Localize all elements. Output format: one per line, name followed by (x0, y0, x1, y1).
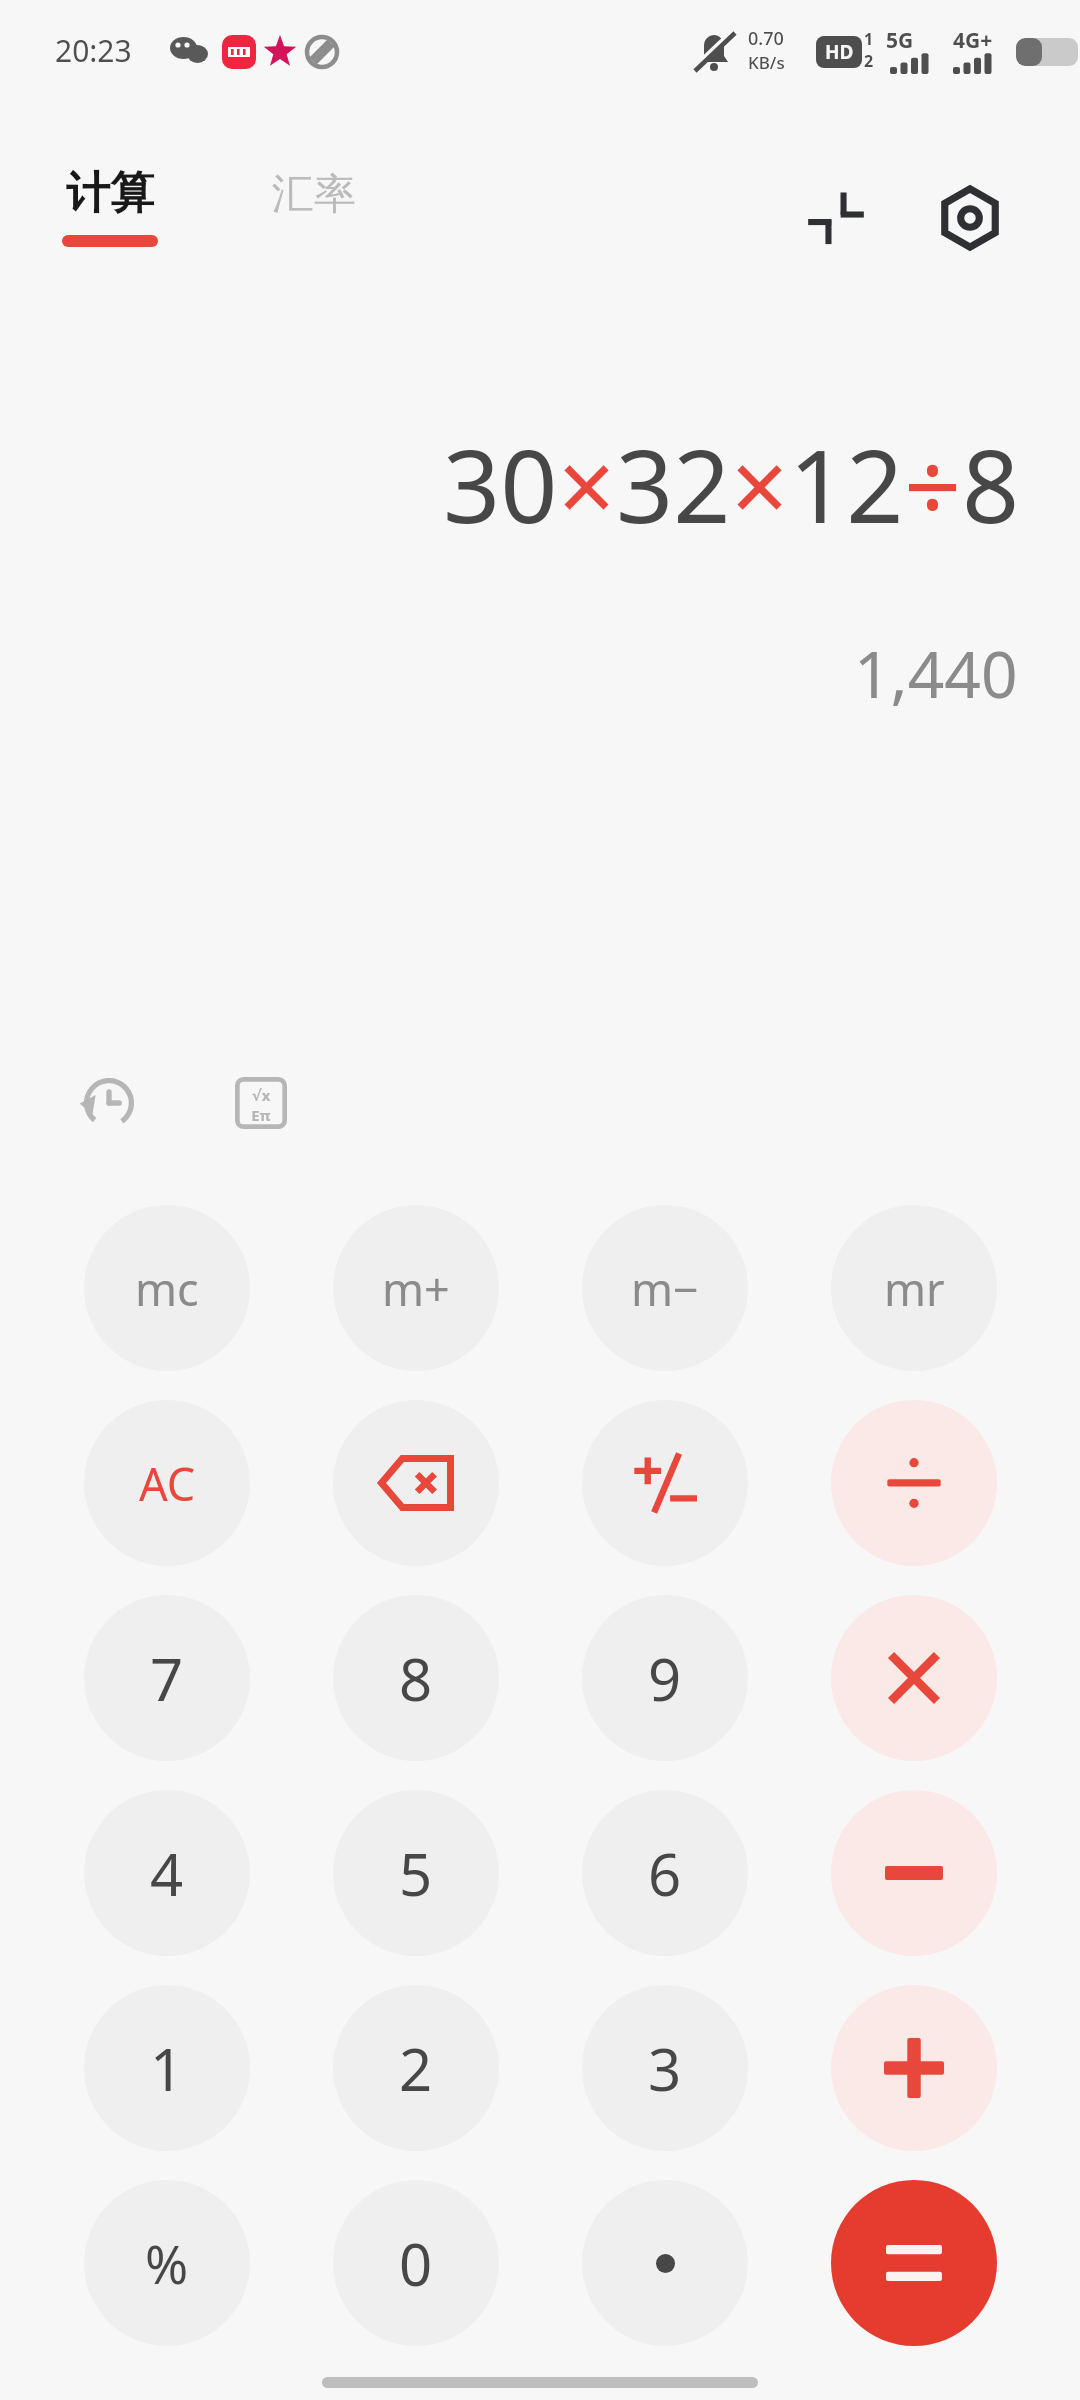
button[interactable]: 6 (582, 1790, 748, 1956)
staticText: 6 (648, 1834, 682, 1913)
staticText: HD (825, 39, 854, 65)
button[interactable]: Equals (831, 2180, 997, 2346)
staticText: × (731, 416, 789, 552)
button[interactable]: 汇率 (272, 168, 356, 221)
staticText: mr (884, 1258, 945, 1319)
staticText: × (558, 416, 616, 552)
staticText: AC (139, 1453, 196, 1514)
staticText: 0.70 (748, 26, 784, 51)
button[interactable]: 0 (333, 2180, 499, 2346)
button[interactable]: History (70, 1064, 148, 1142)
button[interactable]: m+ (333, 1205, 499, 1371)
staticText: m+ (382, 1258, 450, 1319)
button[interactable]: Backspace (333, 1400, 499, 1566)
button[interactable]: Unit converter (786, 168, 886, 268)
staticText: 5 (399, 1834, 433, 1913)
staticText: 1 (150, 2029, 184, 2108)
button[interactable]: mc (84, 1205, 250, 1371)
staticText: 8 (399, 1639, 433, 1718)
staticText: 1 (864, 28, 874, 50)
button[interactable]: 3 (582, 1985, 748, 2151)
button[interactable]: Decimal point (582, 2180, 748, 2346)
staticText: 4G+ (953, 26, 993, 55)
staticText: 3 (648, 2029, 682, 2108)
staticText: 4 (150, 1834, 184, 1913)
staticText: mc (135, 1258, 199, 1319)
staticText: 9 (648, 1639, 682, 1718)
button[interactable]: % (84, 2180, 250, 2346)
button[interactable]: Settings (920, 168, 1020, 268)
button[interactable]: 7 (84, 1595, 250, 1761)
button[interactable]: Minus (831, 1790, 997, 1956)
staticText: 5G (886, 26, 914, 55)
button[interactable]: 9 (582, 1595, 748, 1761)
button[interactable]: Multiply (831, 1595, 997, 1761)
button[interactable]: Plus minus (582, 1400, 748, 1566)
staticText: 20:23 (55, 30, 132, 71)
staticText: 2 (864, 50, 874, 72)
staticText: 汇率 (272, 168, 356, 221)
button[interactable]: 计算 (62, 166, 158, 247)
button[interactable]: mr (831, 1205, 997, 1371)
button[interactable]: AC (84, 1400, 250, 1566)
staticText: 8 (962, 416, 1020, 552)
staticText: 2 (399, 2029, 433, 2108)
staticText: √x (242, 1085, 280, 1105)
staticText: 30 (443, 416, 558, 552)
staticText: % (145, 2228, 189, 2299)
button[interactable]: 2 (333, 1985, 499, 2151)
button[interactable]: m− (582, 1205, 748, 1371)
staticText: m− (631, 1258, 699, 1319)
button[interactable]: 8 (333, 1595, 499, 1761)
button[interactable]: 4 (84, 1790, 250, 1956)
staticText: 12 (789, 416, 904, 552)
staticText: ÷ (904, 416, 962, 552)
button[interactable]: 1 (84, 1985, 250, 2151)
staticText: 7 (150, 1639, 184, 1718)
staticText: KB/s (748, 51, 785, 74)
staticText: 0 (399, 2224, 433, 2303)
button[interactable]: Divide (831, 1400, 997, 1566)
button[interactable]: 5 (333, 1790, 499, 1956)
staticText: 计算 (66, 166, 154, 221)
button[interactable]: Plus (831, 1985, 997, 2151)
staticText: Eπ (242, 1105, 280, 1121)
staticText: 1,440 (854, 630, 1018, 717)
staticText: 32 (616, 416, 731, 552)
button[interactable]: Scientific mode (222, 1064, 300, 1142)
